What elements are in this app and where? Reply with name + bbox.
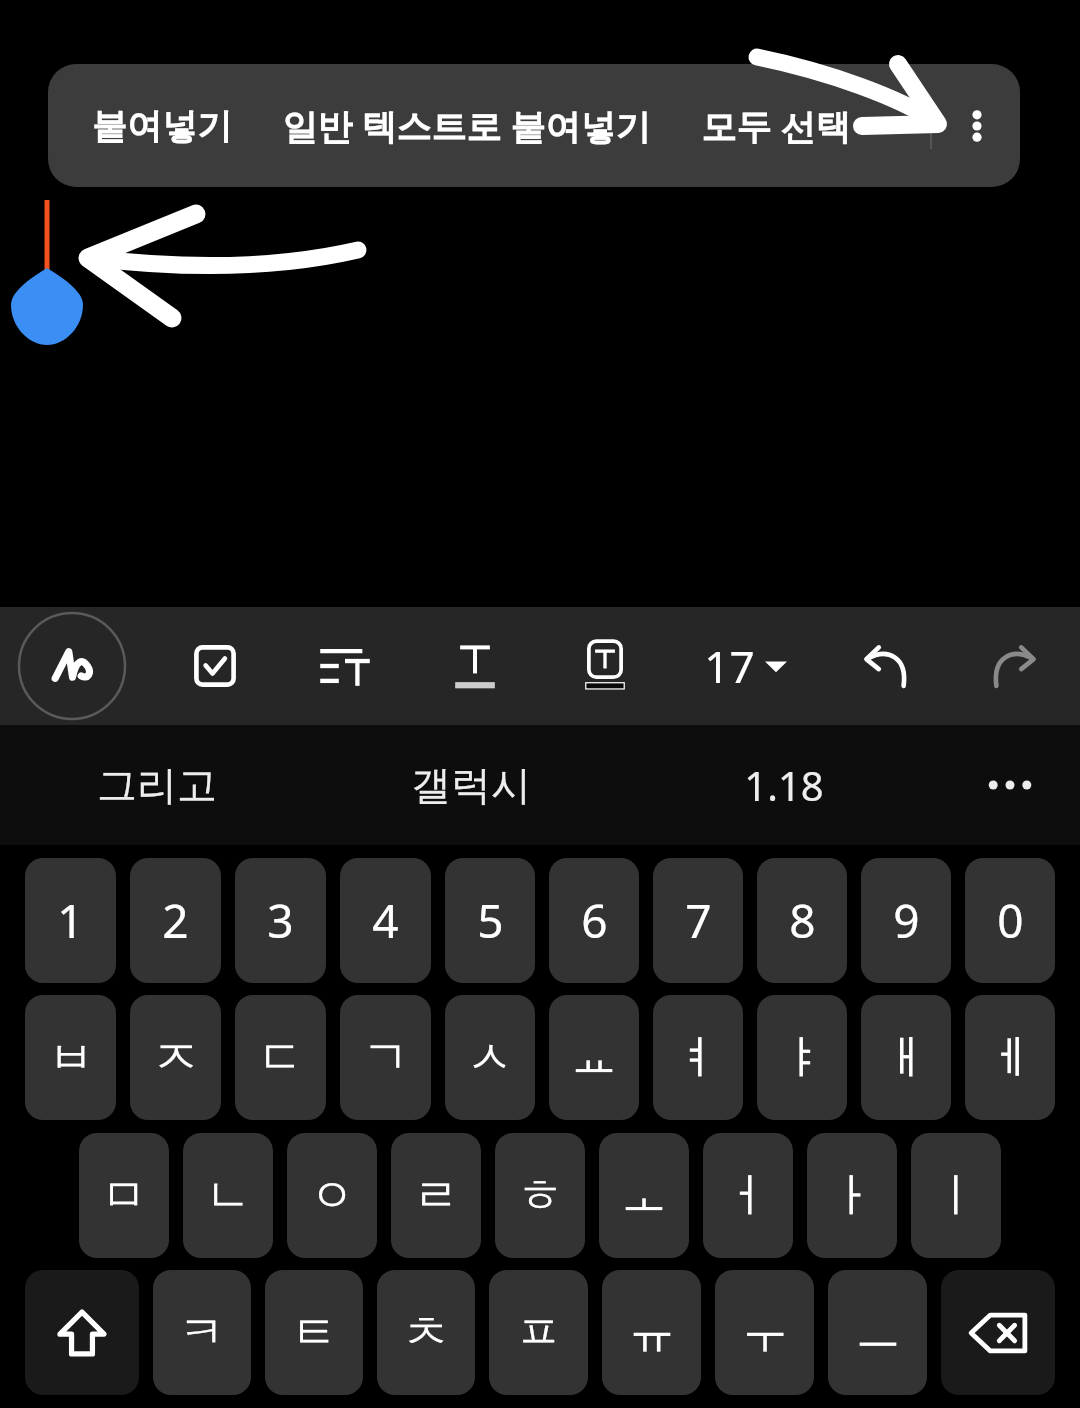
button[interactable]: ㅊ — [377, 1270, 475, 1395]
button[interactable]: Undo — [820, 607, 950, 725]
staticText: 3 — [267, 889, 294, 952]
staticText: ㅑ — [779, 1029, 825, 1087]
button[interactable]: ㅛ — [549, 995, 639, 1120]
staticText: ㅊ — [403, 1304, 449, 1362]
staticText: 9 — [893, 889, 920, 952]
staticText: ㅛ — [571, 1029, 617, 1087]
staticText: ㅣ — [933, 1167, 979, 1225]
staticText: ㅕ — [675, 1029, 721, 1087]
button[interactable]: 7 — [653, 858, 743, 983]
staticText: ㅜ — [742, 1304, 788, 1362]
staticText: 8 — [789, 889, 816, 952]
button[interactable]: Handwriting — [0, 607, 150, 725]
staticText: ㅔ — [987, 1029, 1033, 1087]
staticText: ㅇ — [309, 1167, 355, 1225]
staticText: 1.18 — [744, 758, 824, 812]
button[interactable]: 8 — [757, 858, 847, 983]
button[interactable]: ㅍ — [489, 1270, 588, 1395]
button[interactable]: ㅠ — [602, 1270, 701, 1395]
button[interactable]: 1 — [25, 858, 116, 983]
button[interactable]: ㅜ — [715, 1270, 814, 1395]
button[interactable]: Shift — [25, 1270, 139, 1395]
button[interactable]: 갤럭시 — [314, 725, 627, 845]
button[interactable]: 1.18 — [627, 725, 940, 845]
button[interactable]: ㅐ — [861, 995, 951, 1120]
button[interactable]: ㅕ — [653, 995, 743, 1120]
staticText: ㄴ — [205, 1167, 251, 1225]
button[interactable]: ㅌ — [265, 1270, 363, 1395]
staticText: 1 — [57, 889, 84, 952]
button[interactable]: 그리고 — [0, 725, 314, 845]
staticText: 모두 선택 — [701, 102, 851, 150]
button[interactable]: More options — [934, 64, 1020, 187]
button[interactable]: 5 — [445, 858, 535, 983]
staticText: 7 — [685, 889, 712, 952]
staticText: ㅅ — [467, 1029, 513, 1087]
staticText: ㅓ — [725, 1167, 771, 1225]
button[interactable]: ㅔ — [965, 995, 1055, 1120]
staticText: 일반 텍스트로 붙여넣기 — [282, 102, 651, 150]
button[interactable]: ㅏ — [807, 1133, 897, 1258]
button[interactable]: Redo — [950, 607, 1080, 725]
staticText: ㅁ — [101, 1167, 147, 1225]
button[interactable]: Checklist — [150, 607, 280, 725]
button[interactable]: 17 — [670, 607, 820, 725]
button[interactable]: ㄹ — [391, 1133, 481, 1258]
button[interactable]: ㅗ — [599, 1133, 689, 1258]
button[interactable]: ㅈ — [130, 995, 221, 1120]
staticText: ㅌ — [291, 1304, 337, 1362]
button[interactable]: 0 — [965, 858, 1055, 983]
button[interactable]: Paragraph style — [280, 607, 410, 725]
button[interactable]: 3 — [235, 858, 326, 983]
button[interactable]: ㅅ — [445, 995, 535, 1120]
staticText: 5 — [477, 889, 504, 952]
button[interactable]: ㄷ — [235, 995, 326, 1120]
staticText: ㅂ — [48, 1029, 94, 1087]
button[interactable]: ㅓ — [703, 1133, 793, 1258]
button[interactable]: ㅡ — [828, 1270, 927, 1395]
staticText: ㅋ — [179, 1304, 225, 1362]
button[interactable]: ㅂ — [25, 995, 116, 1120]
button[interactable]: ㄱ — [340, 995, 431, 1120]
staticText: 4 — [372, 889, 399, 952]
staticText: ㅏ — [829, 1167, 875, 1225]
staticText: 6 — [581, 889, 608, 952]
button[interactable]: ㅑ — [757, 995, 847, 1120]
staticText: ㅎ — [517, 1167, 563, 1225]
button[interactable]: ㅋ — [153, 1270, 251, 1395]
staticText: 0 — [997, 889, 1024, 952]
button[interactable]: Backspace — [941, 1270, 1055, 1395]
button[interactable]: 2 — [130, 858, 221, 983]
button[interactable]: ㅣ — [911, 1133, 1001, 1258]
staticText: ㄹ — [413, 1167, 459, 1225]
staticText: 갤럭시 — [411, 760, 531, 810]
staticText: ㅈ — [153, 1029, 199, 1087]
button[interactable]: ㅎ — [495, 1133, 585, 1258]
staticText: ㅍ — [516, 1304, 562, 1362]
staticText: ㅡ — [855, 1304, 901, 1362]
staticText: ㄱ — [363, 1029, 409, 1087]
staticText: 붙여넣기 — [92, 104, 232, 148]
button[interactable]: 붙여넣기 — [92, 64, 232, 187]
staticText: 2 — [162, 889, 189, 952]
button[interactable]: 일반 텍스트로 붙여넣기 — [282, 64, 651, 187]
staticText: ㅐ — [883, 1029, 929, 1087]
button[interactable]: 모두 선택 — [701, 64, 851, 187]
button[interactable]: ㅁ — [79, 1133, 169, 1258]
staticText: 그리고 — [97, 760, 217, 810]
button[interactable]: Text color — [410, 607, 540, 725]
staticText: ㄷ — [258, 1029, 304, 1087]
staticText: 17 — [704, 636, 755, 696]
button[interactable]: 9 — [861, 858, 951, 983]
button[interactable]: ㅇ — [287, 1133, 377, 1258]
button[interactable]: More suggestions — [940, 725, 1080, 845]
button[interactable]: 6 — [549, 858, 639, 983]
button[interactable]: ㄴ — [183, 1133, 273, 1258]
staticText: ㅠ — [629, 1304, 675, 1362]
button[interactable]: Highlight — [540, 607, 670, 725]
staticText: ㅗ — [621, 1167, 667, 1225]
button[interactable]: 4 — [340, 858, 431, 983]
